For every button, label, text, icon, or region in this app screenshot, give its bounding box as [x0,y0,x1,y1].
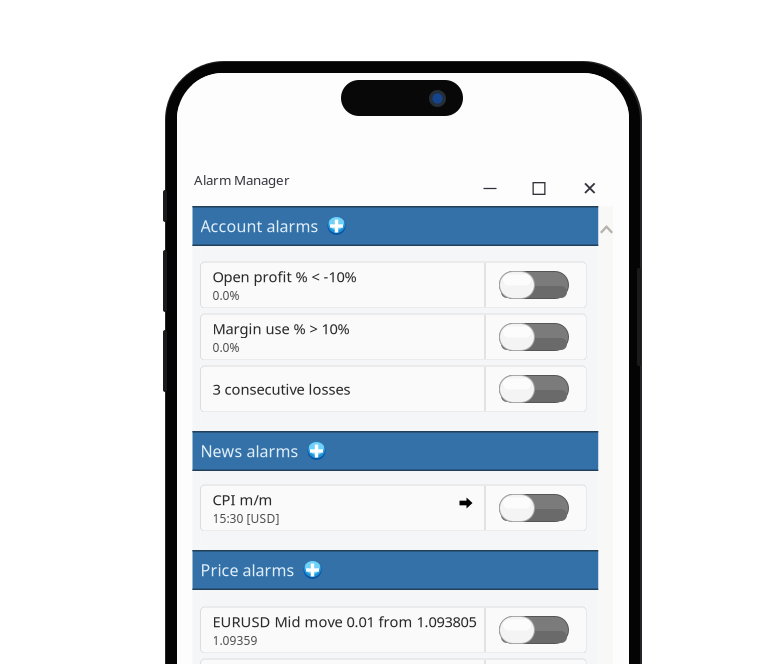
staticText: Account alarms [200,215,318,237]
staticText: CPI m/m [212,490,272,509]
staticText: Alarm Manager [194,171,290,189]
staticText: ✕ [582,178,598,199]
button[interactable]: News alarms [192,431,598,471]
button[interactable]: EURUSD Mid move 0.01 from 1.093805 [200,607,586,653]
button[interactable]: GBPUSD Mid move 0.01 from 1.26410 [200,659,586,664]
staticText: Open profit % < -10% [212,267,356,286]
button[interactable]: Minimize [466,171,514,206]
button[interactable]: Open profit % < -10% [200,262,586,308]
staticText: 0.0% [212,287,239,303]
button[interactable]: CPI m/m [200,485,586,531]
staticText: 15:30 [USD] [212,510,279,526]
button[interactable]: Price alarms [192,550,598,590]
button[interactable]: Margin use % > 10% [200,314,586,360]
button[interactable]: Maximize [514,171,564,206]
staticText: Margin use % > 10% [212,319,349,338]
button[interactable]: Collapse section [598,221,614,237]
button[interactable]: Account alarms [192,206,598,246]
staticText: News alarms [200,440,298,462]
button[interactable]: Close [564,171,616,206]
staticText: 3 consecutive losses [212,379,350,399]
staticText: EURUSD Mid move 0.01 from 1.093805 [212,612,476,631]
staticText: 1.09359 [212,632,257,648]
button[interactable]: 3 consecutive losses [200,366,586,412]
staticText: 0.0% [212,339,239,355]
staticText: Price alarms [200,559,294,581]
